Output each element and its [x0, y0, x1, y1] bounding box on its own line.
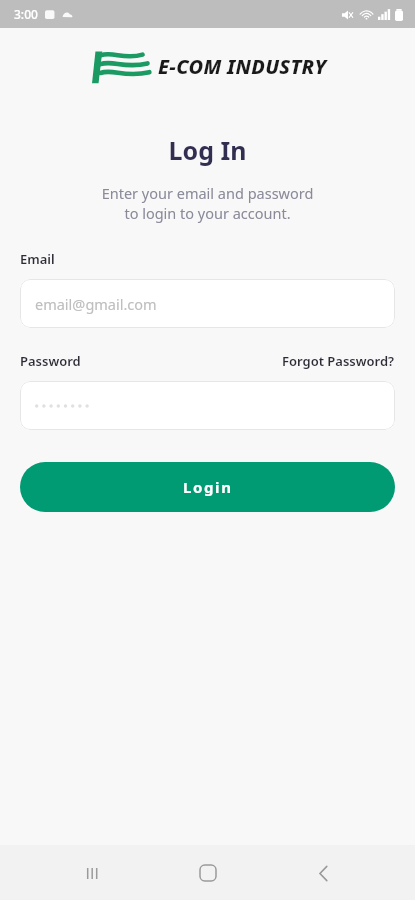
staticText: Password [20, 352, 81, 370]
button[interactable]: Back [299, 849, 347, 897]
button[interactable]: Login [20, 462, 395, 512]
staticText: Forgot Password? [282, 352, 395, 370]
staticText: Login [183, 477, 233, 497]
staticText: Log In [0, 133, 415, 167]
staticText: E-COM INDUSTRY [158, 53, 327, 80]
staticText: Enter your email and password to login t… [0, 183, 415, 224]
button[interactable]: Home [184, 849, 232, 897]
staticText: email@gmail.com [35, 294, 157, 314]
button[interactable] [20, 381, 395, 430]
button[interactable]: email@gmail.com [20, 279, 395, 328]
button[interactable]: Recent apps [68, 849, 116, 897]
staticText: Email [20, 250, 55, 268]
staticText: 3:00 [14, 6, 38, 22]
button[interactable]: Forgot Password? [282, 352, 395, 370]
